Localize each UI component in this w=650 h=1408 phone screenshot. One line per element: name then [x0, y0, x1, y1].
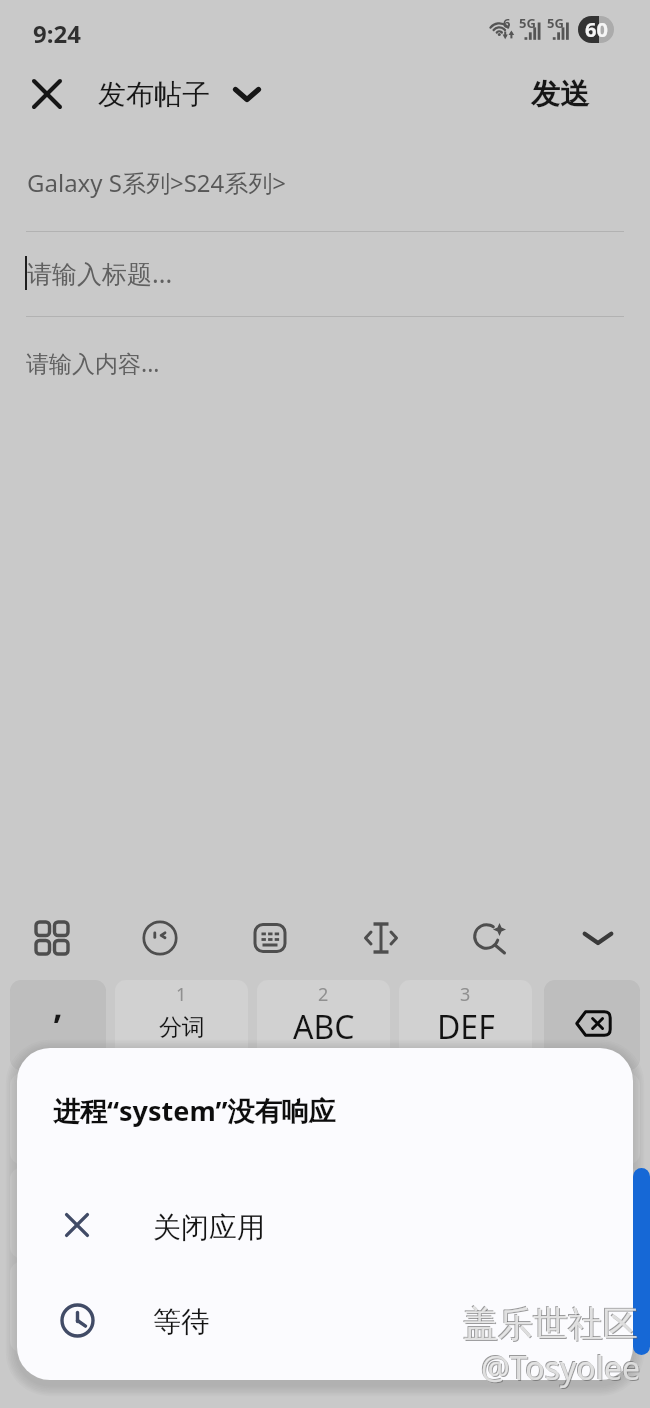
button[interactable]: Search — [456, 904, 524, 972]
staticText: 发布帖子 — [98, 77, 210, 112]
staticText: 5G — [547, 14, 564, 32]
button[interactable] — [544, 1074, 640, 1164]
button[interactable] — [10, 1074, 106, 1164]
button[interactable]: 等待 — [17, 1288, 633, 1360]
button[interactable] — [10, 1262, 106, 1352]
button[interactable]: 1 — [115, 980, 248, 1070]
staticText: 进程“system”没有响应 — [53, 1092, 336, 1129]
staticText: ABC — [293, 1005, 355, 1049]
button[interactable]: Apps — [18, 904, 86, 972]
button[interactable]: Hide keyboard — [564, 904, 632, 972]
staticText: 9:24 — [33, 17, 81, 50]
staticText: 请输入内容... — [26, 347, 160, 378]
button[interactable]: Close — [19, 66, 75, 122]
staticText: 5G — [519, 14, 536, 32]
button[interactable] — [257, 1168, 390, 1258]
staticText: @Tosyolee — [481, 1346, 641, 1390]
button[interactable] — [544, 1262, 640, 1352]
button[interactable]: Emoji — [126, 904, 194, 972]
staticText: 盖乐世社区 — [463, 1302, 638, 1346]
button[interactable]: 2 — [257, 980, 390, 1070]
staticText: 60 — [585, 16, 608, 43]
button[interactable]: 3 — [399, 980, 532, 1070]
button[interactable] — [257, 1074, 390, 1164]
button[interactable]: Galaxy S系列>S24系列> — [27, 160, 287, 204]
button[interactable]: 发送 — [531, 66, 589, 122]
staticText: 盖乐世社区 — [462, 1301, 637, 1345]
staticText: @Tosyolee — [480, 1345, 640, 1389]
button[interactable]: Comma — [10, 980, 106, 1070]
staticText: , — [53, 983, 63, 1029]
button[interactable] — [115, 1168, 248, 1258]
staticText: 6 — [503, 14, 511, 32]
button[interactable] — [544, 1168, 640, 1258]
staticText: 请输入标题... — [27, 256, 173, 290]
button[interactable] — [399, 1262, 532, 1352]
staticText: 1 — [176, 982, 187, 1007]
button[interactable]: 请输入内容... — [26, 341, 160, 383]
staticText: 关闭应用 — [153, 1210, 265, 1245]
staticText: 分词 — [159, 1013, 205, 1042]
button[interactable]: Move cursor — [347, 904, 415, 972]
button[interactable] — [10, 1168, 106, 1258]
button[interactable]: 关闭应用 — [17, 1194, 633, 1266]
button[interactable]: 请输入标题... — [27, 252, 173, 294]
button[interactable]: Backspace — [544, 980, 640, 1070]
staticText: DEF — [437, 1005, 495, 1049]
button[interactable]: Keyboard — [236, 904, 304, 972]
button[interactable] — [115, 1262, 248, 1352]
button[interactable]: 发布帖子 — [98, 66, 261, 122]
staticText: 2 — [318, 982, 329, 1007]
staticText: 等待 — [153, 1304, 209, 1339]
staticText: 3 — [460, 982, 471, 1007]
staticText: @Tosyolee — [482, 1347, 642, 1391]
button[interactable] — [115, 1074, 248, 1164]
staticText: 盖乐世社区 — [464, 1303, 639, 1347]
staticText: Galaxy S系列>S24系列> — [27, 166, 287, 199]
staticText: 发送 — [531, 76, 589, 113]
